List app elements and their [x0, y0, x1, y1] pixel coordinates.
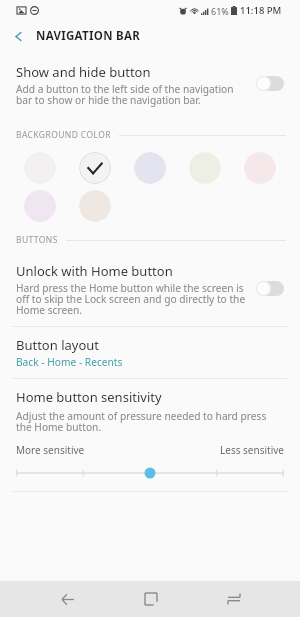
staticText: 11:18 PM — [240, 4, 282, 17]
button[interactable]: Back — [25, 581, 109, 617]
staticText: More sensitive — [16, 443, 85, 457]
staticText: Show and hide button — [16, 63, 151, 81]
staticText: Unlock with Home button — [16, 262, 173, 280]
button[interactable]: Background colour option — [24, 152, 56, 184]
staticText: Home button sensitivity — [16, 388, 162, 406]
staticText: NAVIGATION BAR — [36, 28, 141, 44]
button[interactable]: Toggle off — [256, 280, 284, 296]
button[interactable]: Sensitivity slider — [16, 466, 284, 480]
button[interactable]: Button layout — [0, 331, 300, 375]
staticText: 61% — [211, 5, 229, 17]
staticText: Button layout — [16, 336, 100, 354]
staticText: BACKGROUND COLOR — [16, 129, 111, 141]
button[interactable]: Toggle off — [256, 75, 284, 91]
button[interactable]: Home — [109, 581, 192, 617]
button[interactable]: Unlock with Home button — [0, 256, 300, 322]
button[interactable]: Recents — [192, 581, 275, 617]
staticText: Less sensitive — [220, 443, 284, 457]
button[interactable]: Background colour option — [24, 190, 56, 222]
button[interactable]: Background colour option — [79, 152, 111, 184]
button[interactable]: Background colour option — [189, 152, 221, 184]
button[interactable]: Background colour option — [134, 152, 166, 184]
staticText: BUTTONS — [16, 234, 58, 246]
staticText: Add a button to the left side of the nav… — [16, 82, 248, 107]
staticText: Hard press the Home button while the scr… — [16, 281, 248, 317]
button[interactable]: Navigate up — [0, 21, 36, 51]
button[interactable]: Show and hide button — [0, 57, 300, 111]
staticText: Back - Home - Recents — [16, 355, 123, 369]
staticText: Adjust the amount of pressure needed to … — [16, 409, 284, 434]
button[interactable]: Background colour option — [79, 190, 111, 222]
button[interactable]: Background colour option — [244, 152, 276, 184]
